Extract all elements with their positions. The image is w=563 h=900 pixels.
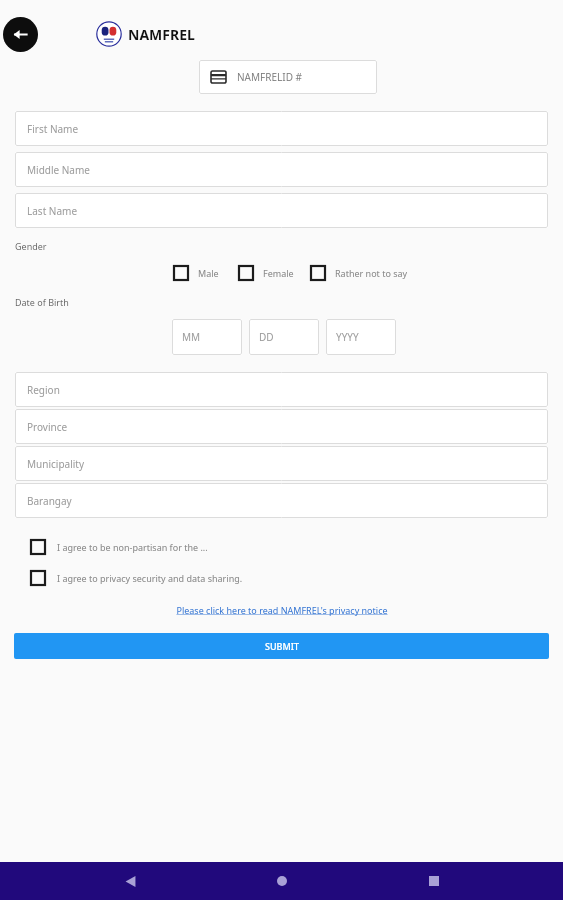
staticText: Rather not to say bbox=[335, 267, 408, 279]
staticText: Municipality bbox=[27, 457, 85, 471]
button[interactable]: NAMFRELID # bbox=[199, 60, 377, 94]
button[interactable]: Barangay bbox=[15, 483, 548, 518]
staticText: MM bbox=[182, 330, 201, 344]
staticText: DD bbox=[259, 330, 274, 344]
staticText: YYYY bbox=[336, 330, 359, 344]
button[interactable]: Home bbox=[259, 862, 305, 900]
button[interactable]: Back bbox=[107, 862, 153, 900]
staticText: Barangay bbox=[27, 494, 72, 508]
staticText: Region bbox=[27, 383, 60, 397]
staticText: Date of Birth bbox=[15, 296, 69, 308]
button[interactable]: YYYY bbox=[326, 319, 396, 355]
button[interactable]: Back bbox=[3, 17, 38, 52]
staticText: NAMFRELID # bbox=[237, 70, 303, 84]
staticText: NAMFREL bbox=[128, 25, 195, 44]
staticText: I agree to be non-partisan for the ... bbox=[57, 541, 208, 553]
staticText: Middle Name bbox=[27, 163, 90, 177]
button[interactable]: First Name bbox=[15, 111, 548, 146]
button[interactable]: Female bbox=[239, 266, 294, 280]
button[interactable]: Last Name bbox=[15, 193, 548, 228]
staticText: Province bbox=[27, 420, 68, 434]
staticText: First Name bbox=[27, 122, 79, 136]
staticText: I agree to privacy security and data sha… bbox=[57, 572, 243, 584]
button[interactable]: DD bbox=[249, 319, 319, 355]
staticText: Female bbox=[263, 267, 294, 279]
button[interactable]: Please click here to read NAMFREL's priv… bbox=[176, 604, 388, 616]
button[interactable]: I agree to be non-partisan for the ... bbox=[31, 540, 208, 554]
button[interactable]: SUBMIT bbox=[14, 633, 549, 659]
button[interactable]: Recent apps bbox=[411, 862, 457, 900]
button[interactable]: MM bbox=[172, 319, 242, 355]
button[interactable]: Region bbox=[15, 372, 548, 407]
button[interactable]: Municipality bbox=[15, 446, 548, 481]
button[interactable]: Middle Name bbox=[15, 152, 548, 187]
button[interactable]: Rather not to say bbox=[311, 266, 408, 280]
staticText: Gender bbox=[15, 240, 47, 252]
button[interactable]: I agree to privacy security and data sha… bbox=[31, 571, 243, 585]
button[interactable]: Province bbox=[15, 409, 548, 444]
staticText: Male bbox=[198, 267, 219, 279]
staticText: Last Name bbox=[27, 204, 78, 218]
button[interactable]: Male bbox=[174, 266, 219, 280]
staticText: SUBMIT bbox=[265, 640, 299, 652]
